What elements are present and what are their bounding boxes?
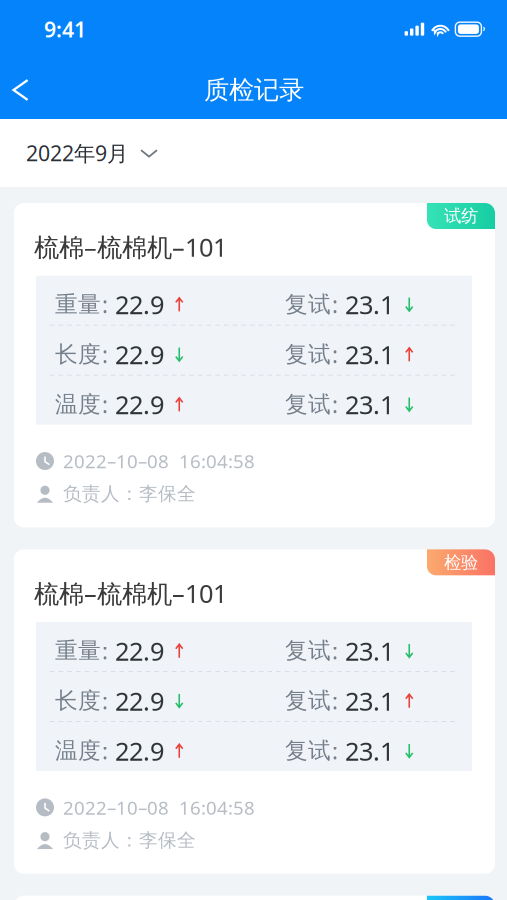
staticText: : bbox=[332, 289, 338, 319]
staticText: 质检记录 bbox=[204, 74, 304, 105]
staticText: 23.1 bbox=[345, 288, 394, 321]
staticText: 2022年9月 bbox=[26, 139, 128, 167]
staticText: : bbox=[102, 339, 108, 369]
staticText: 温度 bbox=[55, 390, 101, 418]
staticText: : bbox=[102, 686, 108, 716]
staticText: : bbox=[102, 736, 108, 766]
staticText: 22.9 bbox=[115, 734, 164, 768]
staticText: 2022–10–08 16:04:58 bbox=[63, 795, 255, 820]
staticText: : bbox=[102, 289, 108, 319]
staticText: 检验 bbox=[444, 552, 478, 573]
staticText: 长度 bbox=[55, 340, 101, 368]
button[interactable]: 2022年9月 bbox=[0, 119, 507, 187]
staticText: 重量 bbox=[55, 290, 101, 318]
staticText: : bbox=[102, 389, 108, 419]
staticText: 23.1 bbox=[345, 388, 394, 421]
staticText: 复试 bbox=[285, 687, 331, 715]
staticText: : bbox=[102, 636, 108, 666]
staticText: 梳棉–梳棉机–101 bbox=[34, 576, 227, 610]
staticText: 长度 bbox=[55, 687, 101, 715]
staticText: : bbox=[332, 686, 338, 716]
staticText: 23.1 bbox=[345, 684, 394, 718]
staticText: 复试 bbox=[285, 390, 331, 418]
staticText: 温度 bbox=[55, 737, 101, 765]
button[interactable]: Back bbox=[1, 69, 41, 111]
staticText: 试纺 bbox=[444, 205, 478, 227]
staticText: 质检 bbox=[444, 898, 478, 900]
staticText: 梳棉–梳棉机–101 bbox=[34, 230, 227, 264]
staticText: 复试 bbox=[285, 290, 331, 318]
staticText: 22.9 bbox=[115, 338, 164, 371]
staticText: 22.9 bbox=[115, 634, 164, 668]
staticText: 复试 bbox=[285, 637, 331, 665]
staticText: : bbox=[332, 736, 338, 766]
staticText: 负责人：李保全 bbox=[63, 829, 196, 852]
staticText: 22.9 bbox=[115, 684, 164, 718]
staticText: 23.1 bbox=[345, 734, 394, 768]
staticText: 9:41 bbox=[44, 15, 86, 43]
staticText: 重量 bbox=[55, 637, 101, 665]
staticText: 23.1 bbox=[345, 634, 394, 668]
staticText: : bbox=[332, 389, 338, 419]
staticText: 复试 bbox=[285, 340, 331, 368]
staticText: 复试 bbox=[285, 737, 331, 765]
staticText: 负责人：李保全 bbox=[63, 482, 196, 505]
staticText: 22.9 bbox=[115, 288, 164, 321]
staticText: : bbox=[332, 339, 338, 369]
staticText: 23.1 bbox=[345, 338, 394, 371]
staticText: 2022–10–08 16:04:58 bbox=[63, 449, 255, 473]
staticText: 22.9 bbox=[115, 388, 164, 421]
staticText: : bbox=[332, 636, 338, 666]
